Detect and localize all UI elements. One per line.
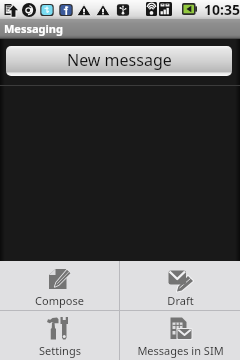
button[interactable]: Compose bbox=[0, 261, 119, 310]
staticText: Draft bbox=[167, 293, 194, 308]
button[interactable]: Draft bbox=[120, 261, 240, 310]
staticText: Messages in SIM bbox=[137, 343, 224, 358]
staticText: Settings bbox=[39, 343, 81, 358]
staticText: Messaging bbox=[4, 21, 63, 36]
button[interactable]: Settings bbox=[0, 311, 119, 360]
staticText: 10:35 bbox=[204, 0, 240, 19]
staticText: New message bbox=[67, 49, 172, 71]
button[interactable]: New message bbox=[6, 46, 232, 76]
button[interactable]: Messages in SIM bbox=[120, 311, 240, 360]
staticText: Compose bbox=[35, 293, 84, 308]
